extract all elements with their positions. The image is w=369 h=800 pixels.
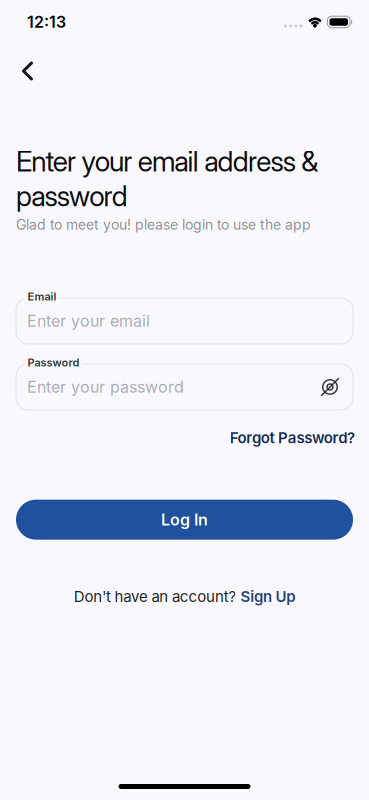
staticText: Email: [27, 290, 56, 303]
staticText: Don't have an account?: [74, 588, 236, 605]
button[interactable]: Log In: [16, 500, 353, 540]
staticText: Log In: [161, 510, 208, 529]
staticText: Forgot Password?: [230, 429, 355, 447]
button[interactable]: Sign Up: [240, 588, 295, 605]
staticText: Enter your password: [27, 377, 184, 396]
staticText: 12:13: [27, 13, 66, 31]
button[interactable]: [320, 377, 340, 397]
staticText: Glad to meet you! please login to use th…: [16, 216, 311, 233]
staticText: Password: [27, 356, 79, 369]
staticText: Enter your email: [27, 311, 150, 330]
staticText: Sign Up: [240, 588, 295, 605]
button[interactable]: Forgot Password?: [230, 429, 355, 447]
staticText: Enter your email address & password: [16, 144, 318, 213]
button[interactable]: [0, 61, 45, 80]
